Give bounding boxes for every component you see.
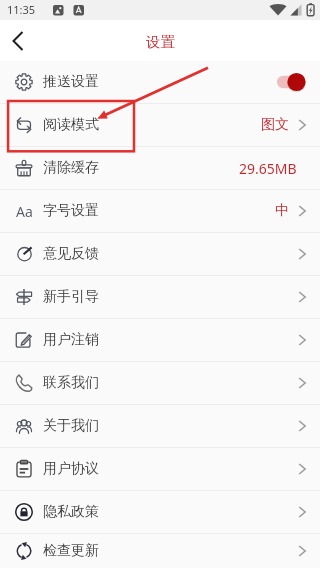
staticText: 中 [275, 202, 289, 220]
staticText: 29.65MB [239, 159, 297, 178]
staticText: Aa [16, 202, 33, 220]
staticText: 新手引导 [43, 288, 99, 306]
button[interactable]: 推送设置 [0, 61, 320, 104]
staticText: 阅读模式 [43, 116, 99, 134]
button[interactable]: 用户注销 [0, 319, 320, 362]
staticText: 联系我们 [43, 374, 99, 392]
staticText: 检查更新 [43, 542, 99, 560]
button[interactable]: 意见反馈 [0, 233, 320, 276]
button[interactable]: 检查更新 [0, 534, 320, 568]
button[interactable]: 阅读模式 [0, 104, 320, 147]
staticText: 字号设置 [43, 202, 99, 220]
staticText: 清除缓存 [43, 159, 99, 177]
button[interactable]: 用户协议 [0, 448, 320, 491]
button[interactable]: 清除缓存 [0, 147, 320, 190]
staticText: 11:35 [7, 2, 36, 17]
staticText: 用户协议 [43, 460, 99, 478]
staticText: 设置 [146, 33, 175, 51]
button[interactable]: Back [0, 21, 38, 61]
staticText: 意见反馈 [43, 245, 99, 263]
staticText: 用户注销 [43, 331, 99, 349]
button[interactable]: 隐私政策 [0, 491, 320, 534]
staticText: 推送设置 [43, 73, 99, 91]
button[interactable]: 新手引导 [0, 276, 320, 319]
button[interactable]: Toggle push notifications [277, 73, 306, 91]
staticText: 关于我们 [43, 417, 99, 435]
staticText: 图文 [261, 116, 289, 134]
button[interactable]: 关于我们 [0, 405, 320, 448]
button[interactable]: 联系我们 [0, 362, 320, 405]
staticText: 隐私政策 [43, 503, 99, 521]
button[interactable]: Aa [0, 190, 320, 233]
